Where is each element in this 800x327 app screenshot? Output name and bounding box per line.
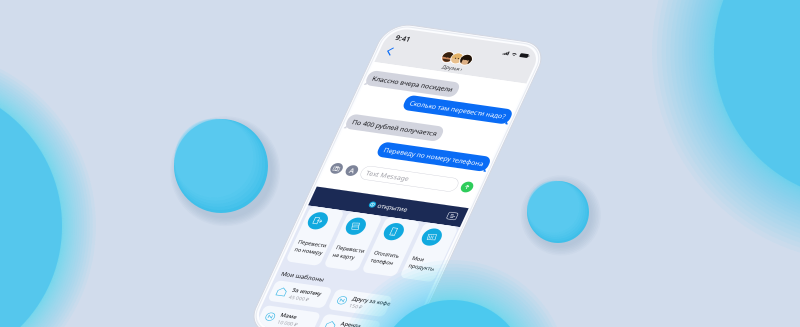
staticText: Классно вчера посидели	[24, 134, 218, 155]
staticText: Сколько там перевести надо?	[135, 182, 366, 203]
staticText: Переведу по номеру телефона	[125, 307, 366, 327]
staticText: По 400 рублей получается	[24, 249, 228, 270]
